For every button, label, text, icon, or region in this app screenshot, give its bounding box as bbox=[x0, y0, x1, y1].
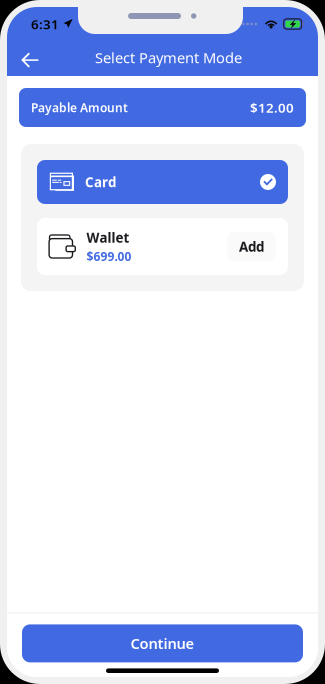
staticText: Add bbox=[239, 238, 264, 255]
staticText: $12.00 bbox=[250, 99, 294, 116]
button[interactable]: Back bbox=[14, 45, 46, 75]
staticText: 6:31 bbox=[31, 15, 59, 33]
button[interactable]: Continue bbox=[22, 624, 303, 662]
staticText: Continue bbox=[130, 634, 194, 653]
staticText: Wallet bbox=[86, 229, 129, 246]
button[interactable]: Wallet bbox=[37, 218, 288, 275]
staticText: Select Payment Mode bbox=[95, 48, 242, 67]
staticText: Payable Amount bbox=[31, 99, 128, 115]
staticText: Card bbox=[85, 173, 116, 191]
staticText: $699.00 bbox=[86, 248, 131, 264]
button[interactable]: Card bbox=[37, 160, 288, 204]
